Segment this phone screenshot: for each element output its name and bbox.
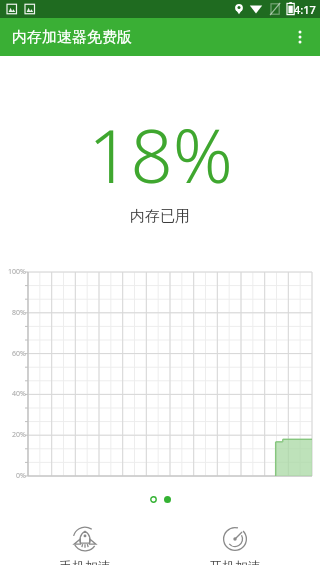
- staticText: 0%: [16, 471, 26, 481]
- button[interactable]: Phone boost: [10, 522, 160, 569]
- button[interactable]: More options: [280, 18, 320, 56]
- staticText: 18%: [88, 104, 233, 205]
- staticText: 80%: [12, 308, 26, 318]
- staticText: 40%: [12, 389, 26, 399]
- staticText: 内存已用: [130, 207, 190, 226]
- button[interactable]: Memory usage history chart: [0, 264, 320, 482]
- staticText: 开机加速: [209, 558, 261, 565]
- staticText: 内存加速器免费版: [12, 28, 132, 47]
- button[interactable]: Boot boost: [160, 522, 310, 569]
- button[interactable]: Page 2: [160, 492, 174, 506]
- staticText: 4:17: [294, 2, 316, 17]
- button[interactable]: Page 1: [146, 492, 160, 506]
- staticText: 60%: [12, 349, 26, 359]
- staticText: 手机加速: [59, 558, 111, 565]
- staticText: 100%: [8, 267, 26, 277]
- staticText: 20%: [12, 430, 26, 440]
